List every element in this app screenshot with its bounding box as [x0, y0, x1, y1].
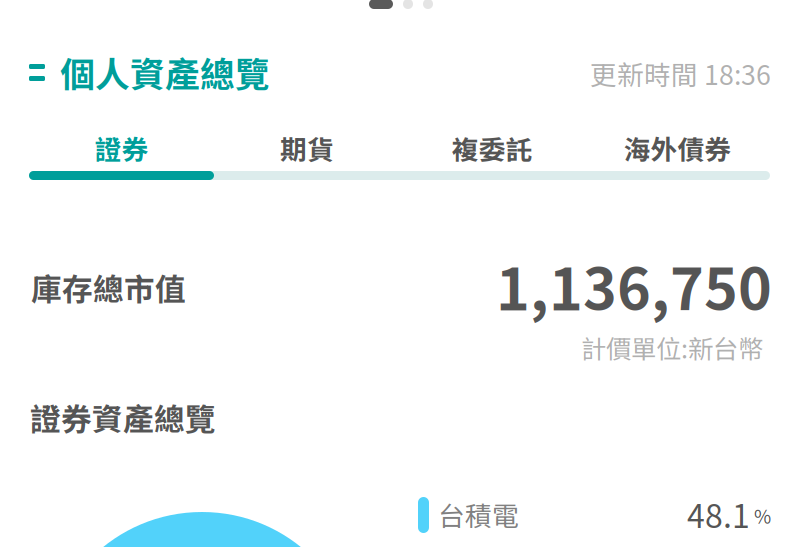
staticText: 期貨	[280, 129, 334, 167]
staticText: 更新時間 18:36	[590, 54, 771, 93]
staticText: 複委託	[452, 129, 533, 167]
staticText: 個人資產總覽	[60, 47, 270, 97]
button[interactable]: 台積電	[418, 495, 771, 535]
button[interactable]: Menu	[15, 50, 59, 94]
staticText: 48.1	[687, 491, 750, 537]
button[interactable]: 證券	[29, 122, 214, 174]
staticText: 台積電	[438, 495, 519, 534]
button[interactable]: 複委託	[399, 122, 585, 174]
staticText: 證券資產總覽	[30, 395, 216, 439]
staticText: %	[754, 502, 771, 529]
staticText: 證券	[95, 129, 149, 167]
button[interactable]: 海外債券	[585, 122, 770, 174]
staticText: 1,136,750	[496, 244, 772, 327]
staticText: 庫存總市值	[31, 265, 186, 309]
button[interactable]: 期貨	[214, 122, 399, 174]
staticText: 計價單位:新台幣	[581, 329, 763, 366]
staticText: 海外債券	[623, 129, 731, 167]
